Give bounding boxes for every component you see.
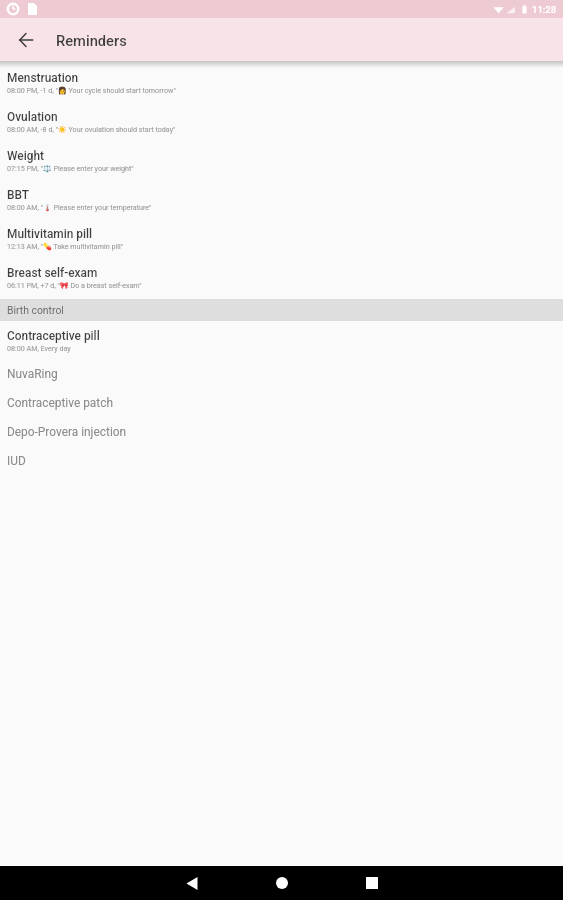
staticText: Ovulation xyxy=(7,110,58,124)
button[interactable]: Back xyxy=(147,866,237,900)
staticText: 08:00 AM, Every day xyxy=(7,344,71,352)
staticText: 08:00 PM, -1 d, "👩 Your cycle should sta… xyxy=(7,86,176,94)
staticText: NuvaRing xyxy=(7,367,58,381)
staticText: 11:28 xyxy=(532,4,557,15)
button[interactable]: BBT xyxy=(0,182,563,221)
button[interactable]: Breast self-exam xyxy=(0,260,563,299)
staticText: Contraceptive patch xyxy=(7,396,113,410)
staticText: 08:00 AM, "🌡 Please enter your temperatu… xyxy=(7,203,152,211)
staticText: Menstruation xyxy=(7,71,79,85)
staticText: BBT xyxy=(7,188,30,202)
staticText: IUD xyxy=(7,454,26,468)
staticText: 07:15 PM, "⚖ Please enter your weight" xyxy=(7,164,134,172)
button[interactable]: Ovulation xyxy=(0,104,563,143)
staticText: Contraceptive pill xyxy=(7,329,100,343)
button[interactable]: Recent apps xyxy=(327,866,417,900)
staticText: Reminders xyxy=(56,32,127,49)
button[interactable]: Home xyxy=(237,866,327,900)
button[interactable]: Weight xyxy=(0,143,563,182)
button[interactable]: IUD xyxy=(0,447,563,476)
staticText: 12:13 AM, "💊 Take multivitamin pill" xyxy=(7,242,123,250)
button[interactable]: Contraceptive pill xyxy=(0,321,563,360)
staticText: Birth control xyxy=(7,304,64,316)
button[interactable]: Contraceptive patch xyxy=(0,389,563,418)
staticText: Depo-Provera injection xyxy=(7,425,127,439)
button[interactable]: Depo-Provera injection xyxy=(0,418,563,447)
staticText: Breast self-exam xyxy=(7,266,98,280)
button[interactable]: Back xyxy=(0,18,52,61)
button[interactable]: NuvaRing xyxy=(0,360,563,389)
staticText: 08:00 AM, -8 d, "☀ Your ovulation should… xyxy=(7,125,176,133)
staticText: 06:11 PM, +7 d, "🎀 Do a breast self-exam… xyxy=(7,281,142,289)
button[interactable]: Menstruation xyxy=(0,65,563,104)
staticText: Weight xyxy=(7,149,44,163)
button[interactable]: Multivitamin pill xyxy=(0,221,563,260)
staticText: Multivitamin pill xyxy=(7,227,93,241)
